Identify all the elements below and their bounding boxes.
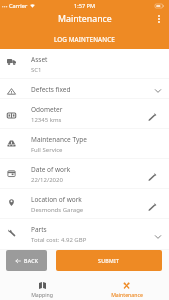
staticText: 12345 kms [31,116,62,124]
staticText: Total cost: 4.92 GBP [31,236,87,244]
button[interactable]: Location of work [0,189,169,219]
staticText: SUBMIT [98,257,120,264]
staticText: SC1 [31,66,42,74]
staticText: Carrier [9,2,28,10]
button[interactable]: Maintenance [84,279,169,300]
staticText: Defects fixed [31,85,71,94]
staticText: Asset [31,55,48,64]
staticText: 22/12/2020 [31,176,63,184]
button[interactable]: Odometer [0,99,169,129]
staticText: Date of work [31,165,71,174]
staticText: 1:57 PM [74,2,96,10]
button[interactable]: LOG MAINTENANCE [0,27,169,49]
button[interactable]: BACK [6,250,47,271]
staticText: Full Service [31,146,63,154]
staticText: Location of work [31,195,82,204]
button[interactable]: Date of work [0,159,169,189]
staticText: Odometer [31,105,63,114]
staticText: Mapping [31,291,53,298]
staticText: Maintenance [111,291,143,298]
button[interactable]: Mapping [0,279,84,300]
staticText: Desmonds Garage [31,206,84,214]
button[interactable]: Parts [0,219,169,250]
staticText: Maintenance [58,13,112,25]
button[interactable]: SUBMIT [56,250,162,271]
staticText: LOG MAINTENANCE [54,35,115,44]
button[interactable]: Asset [0,49,169,79]
staticText: Maintenance Type [31,135,87,144]
button[interactable]: Maintenance Type [0,129,169,159]
button[interactable]: More options [149,11,169,27]
button[interactable]: Defects fixed [0,79,169,99]
staticText: Parts [31,225,47,234]
staticText: BACK [24,257,39,264]
